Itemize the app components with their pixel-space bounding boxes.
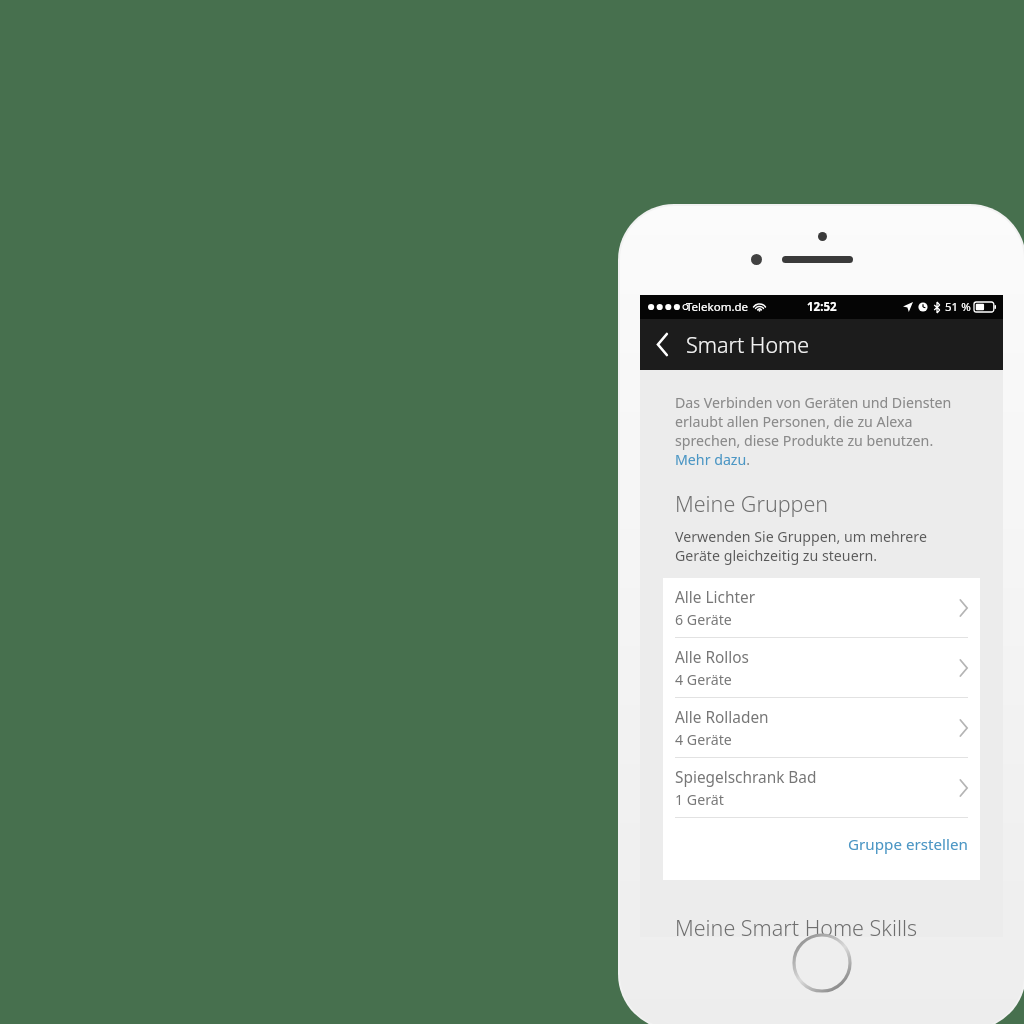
button[interactable]: Back — [640, 319, 686, 370]
button[interactable]: Alle Rolladen — [663, 698, 980, 758]
staticText: Alle Rollos — [675, 647, 749, 668]
button[interactable]: Spiegelschrank Bad — [663, 758, 980, 818]
staticText: Gruppe erstellen — [848, 834, 968, 855]
staticText: 51 % — [945, 299, 971, 315]
staticText: Meine Gruppen — [675, 489, 829, 518]
staticText: Alle Lichter — [675, 587, 755, 608]
staticText: Meine Smart Home Skills — [675, 913, 917, 937]
staticText: Telekom.de — [686, 299, 749, 315]
staticText: 6 Geräte — [675, 610, 732, 629]
staticText: Alle Rolladen — [675, 707, 769, 728]
button[interactable]: Alle Lichter — [663, 578, 980, 638]
staticText: 4 Geräte — [675, 670, 732, 689]
staticText: 4 Geräte — [675, 730, 732, 749]
staticText: 12:52 — [807, 299, 837, 315]
button[interactable]: Gruppe erstellen — [663, 818, 980, 871]
staticText: Spiegelschrank Bad — [675, 767, 817, 788]
staticText: Verwenden Sie Gruppen, um mehrere Geräte… — [675, 527, 968, 565]
staticText: Smart Home — [686, 330, 810, 359]
button[interactable]: Alle Rollos — [663, 638, 980, 698]
staticText: Das Verbinden von Geräten und Diensten e… — [675, 393, 968, 469]
staticText: 1 Gerät — [675, 790, 724, 809]
